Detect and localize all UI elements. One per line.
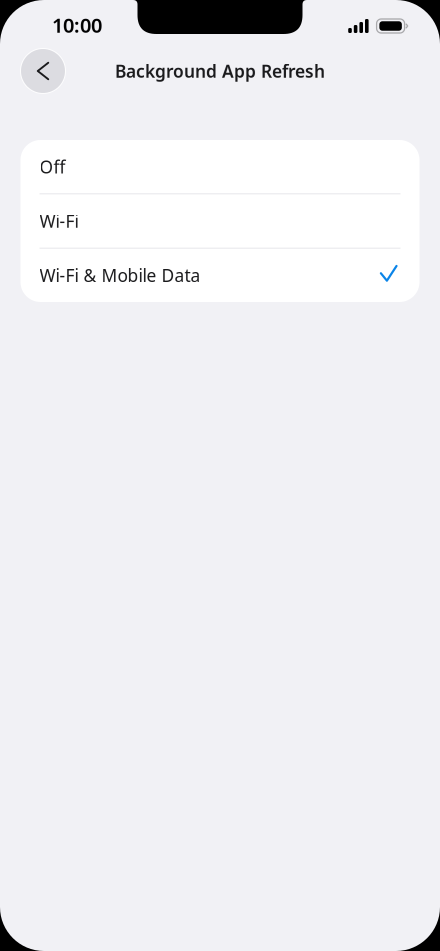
staticText: Wi-Fi <box>39 209 78 232</box>
button[interactable]: Back <box>19 47 67 95</box>
staticText: Background App Refresh <box>115 59 325 82</box>
button[interactable]: Wi-Fi & Mobile Data <box>20 249 419 302</box>
staticText: Wi-Fi & Mobile Data <box>39 264 200 287</box>
button[interactable]: Off <box>20 140 419 193</box>
button[interactable]: Wi-Fi <box>20 194 419 248</box>
staticText: 10:00 <box>52 12 102 38</box>
staticText: Off <box>39 155 65 178</box>
